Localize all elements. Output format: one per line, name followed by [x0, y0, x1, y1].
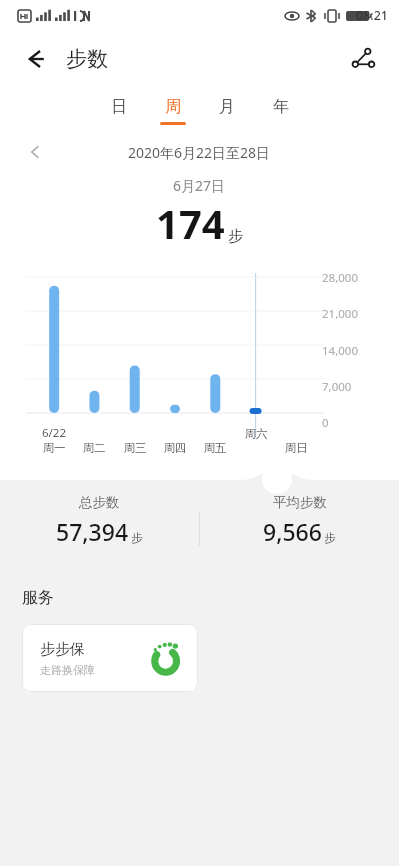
staticText: 57,394: [56, 516, 129, 547]
button[interactable]: 周: [146, 97, 200, 125]
button[interactable]: 月: [200, 97, 254, 125]
staticText: 日: [111, 97, 127, 117]
staticText: 2020年6月22日至28日: [128, 143, 271, 162]
staticText: 9,566: [263, 516, 322, 547]
staticText: 步数: [66, 46, 108, 72]
staticText: 08:21: [356, 7, 389, 24]
button[interactable]: 平均步数: [200, 494, 399, 547]
staticText: 7,000: [322, 379, 352, 395]
staticText: 周四: [160, 441, 190, 455]
staticText: 步: [324, 531, 336, 545]
staticText: 周日: [281, 441, 311, 455]
staticText: 周三: [120, 441, 150, 455]
staticText: 周六: [241, 427, 271, 441]
button[interactable]: Share: [341, 37, 385, 81]
button[interactable]: 日: [92, 97, 146, 125]
staticText: 年: [273, 97, 289, 117]
staticText: 总步数: [79, 494, 120, 511]
staticText: 步: [228, 227, 243, 246]
staticText: 21,000: [322, 306, 358, 322]
staticText: 服务: [22, 588, 54, 608]
button[interactable]: Previous week: [18, 135, 52, 169]
staticText: 174: [156, 196, 225, 250]
staticText: 月: [219, 97, 235, 117]
staticText: 6/22: [39, 425, 69, 441]
staticText: 周五: [200, 441, 230, 455]
staticText: 28,000: [322, 270, 358, 286]
staticText: 周二: [79, 441, 109, 455]
button[interactable]: 年: [254, 97, 308, 125]
staticText: 6月27日: [173, 176, 226, 195]
button[interactable]: Back: [14, 37, 58, 81]
staticText: 0: [322, 415, 329, 431]
button[interactable]: 总步数: [0, 494, 199, 547]
staticText: 步步保: [40, 640, 85, 659]
staticText: 平均步数: [273, 494, 327, 511]
staticText: 走路换保障: [40, 663, 95, 677]
staticText: 周一: [39, 441, 69, 455]
button[interactable]: 步步保: [22, 624, 198, 692]
staticText: 步: [131, 531, 143, 545]
staticText: 14,000: [322, 343, 358, 359]
staticText: 周: [165, 97, 181, 117]
